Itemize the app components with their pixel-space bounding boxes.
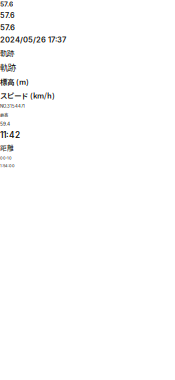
staticText: スピード (km/h): [0, 90, 55, 101]
staticText: 軌跡: [0, 61, 16, 73]
staticText: 00:10: [0, 155, 12, 160]
staticText: 軌跡: [0, 47, 14, 58]
staticText: 1:54:00: [0, 163, 15, 168]
staticText: 59.4: [0, 121, 10, 127]
staticText: 距離: [0, 143, 14, 153]
staticText: 最高: [0, 112, 8, 118]
staticText: 57.6: [0, 23, 15, 32]
staticText: 2024/05/26 17:37: [0, 35, 66, 44]
staticText: 11:42: [0, 130, 20, 140]
staticText: 標高 (m): [0, 76, 29, 87]
staticText: 57.6: [0, 0, 13, 8]
staticText: 57.6: [0, 11, 15, 20]
staticText: NO.3154471: [0, 104, 25, 109]
